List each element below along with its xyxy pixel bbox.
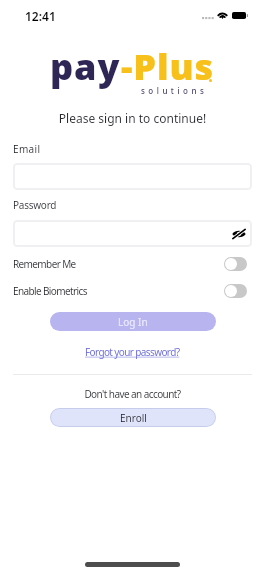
- button[interactable]: Enable Biometrics: [13, 284, 247, 298]
- staticText: Forgot your password?: [85, 345, 180, 359]
- staticText: Email: [13, 142, 41, 156]
- button[interactable]: Show password: [230, 225, 248, 243]
- staticText: Password: [13, 198, 57, 212]
- button[interactable]: Remember Me: [13, 257, 247, 271]
- staticText: Don't have an account?: [0, 387, 265, 401]
- staticText: -Plus: [121, 42, 215, 91]
- button[interactable]: Log In: [50, 312, 216, 331]
- staticText: pay: [50, 42, 121, 91]
- staticText: Enroll: [120, 411, 147, 425]
- button[interactable]: Forgot your password?: [81, 343, 184, 361]
- button[interactable]: Show password: [13, 220, 252, 247]
- staticText: Please sign in to continue!: [0, 110, 265, 126]
- staticText: Log In: [118, 315, 148, 329]
- staticText: 12:41: [25, 8, 56, 24]
- button[interactable]: Enroll: [50, 408, 216, 427]
- staticText: s o l u t i o n s: [141, 85, 205, 96]
- staticText: Remember Me: [13, 257, 76, 271]
- button[interactable]: [13, 163, 252, 190]
- staticText: Enable Biometrics: [13, 284, 87, 298]
